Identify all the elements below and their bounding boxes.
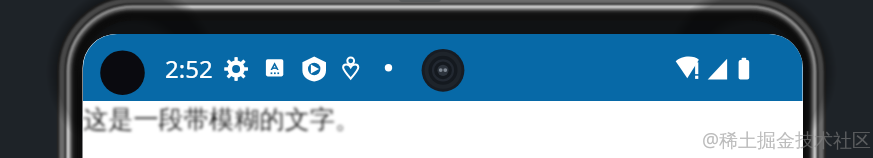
staticText: 2:52 <box>165 52 213 85</box>
staticText: @稀土掘金技术社区 <box>702 127 872 153</box>
staticText: 这是一段带模糊的文字。 <box>83 104 361 136</box>
